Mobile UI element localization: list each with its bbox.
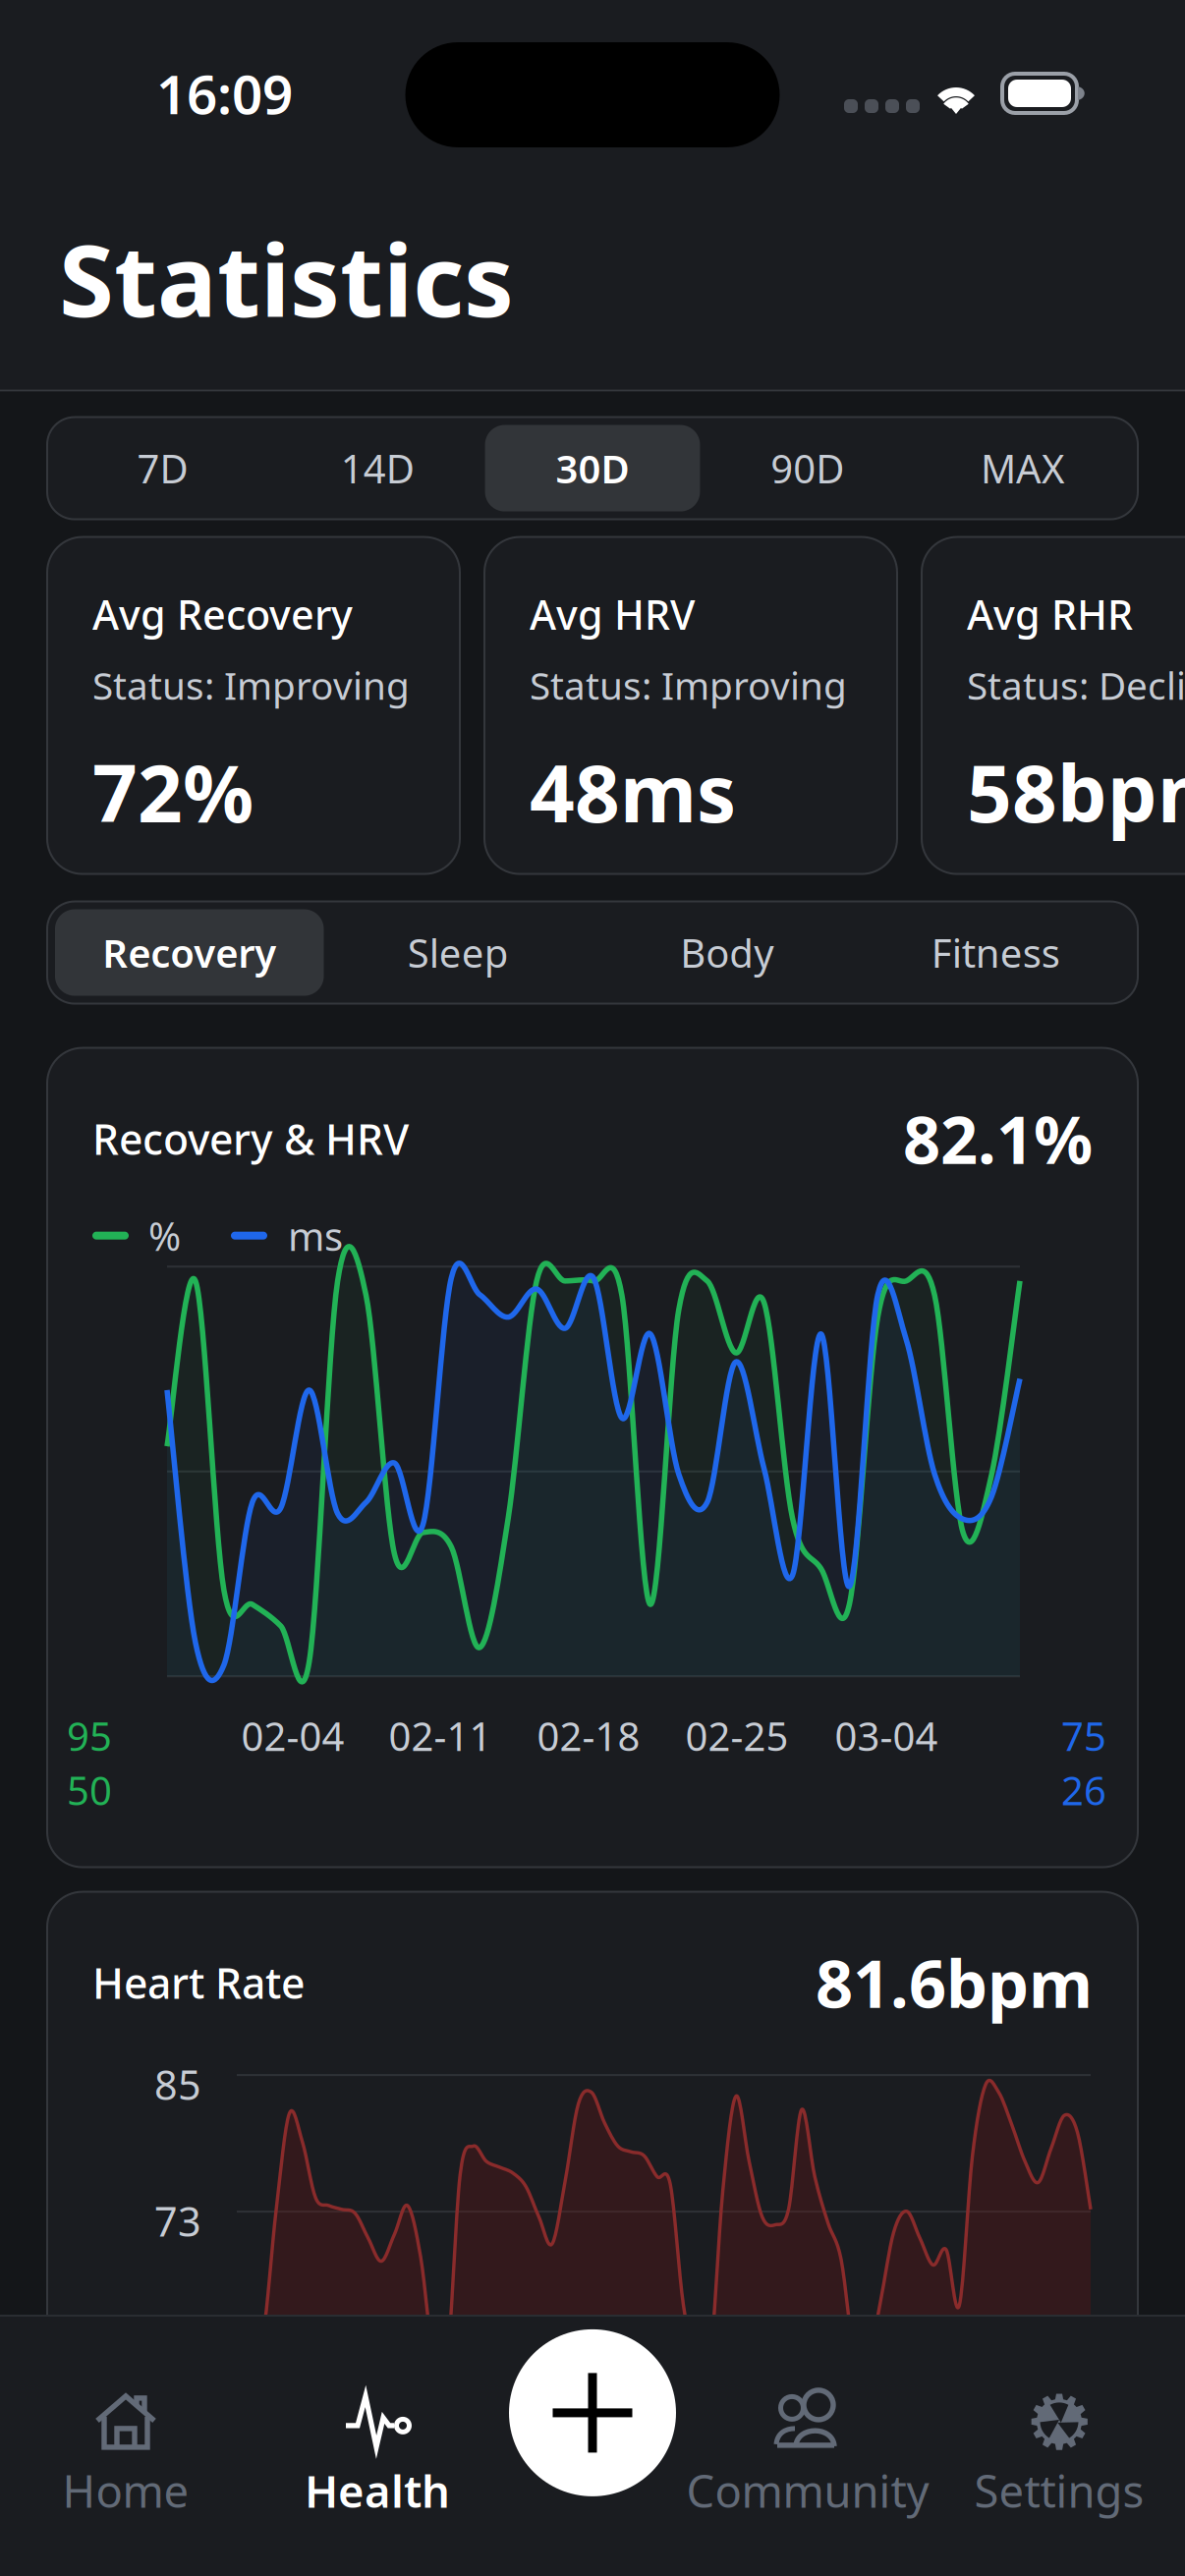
button[interactable]: Recovery — [55, 909, 324, 996]
staticText: Avg HRV — [530, 587, 695, 641]
staticText: 14D — [341, 442, 414, 494]
staticText: Status: Declining — [967, 660, 1185, 710]
button[interactable]: Settings — [933, 2286, 1185, 2576]
staticText: Fitness — [931, 926, 1060, 979]
button[interactable]: 90D — [700, 425, 915, 511]
button[interactable]: 14D — [270, 425, 485, 511]
staticText: 73 — [154, 2194, 201, 2248]
staticText: Home — [62, 2461, 189, 2520]
button[interactable]: Body — [592, 909, 861, 996]
staticText: 02-25 — [685, 1710, 789, 1762]
staticText: 75 — [1061, 1710, 1106, 1762]
staticText: 26 — [1061, 1764, 1106, 1816]
staticText: 02-04 — [241, 1710, 344, 1762]
staticText: 90D — [771, 442, 844, 494]
staticText: 85 — [154, 2057, 201, 2111]
button[interactable]: Avg RHR — [922, 537, 1185, 874]
staticText: 81.6bpm — [816, 1939, 1093, 2026]
staticText: Community — [686, 2461, 929, 2520]
staticText: Statistics — [59, 212, 514, 344]
staticText: Avg RHR — [967, 587, 1133, 641]
button[interactable]: MAX — [915, 425, 1130, 511]
staticText: 03-04 — [835, 1710, 938, 1762]
staticText: 02-11 — [389, 1710, 492, 1762]
button[interactable]: Fitness — [861, 909, 1130, 996]
staticText: 02-18 — [537, 1710, 640, 1762]
staticText: 48ms — [530, 740, 736, 844]
staticText: 82.1% — [903, 1095, 1093, 1182]
button[interactable]: Avg Recovery — [47, 537, 460, 874]
staticText: Health — [305, 2461, 450, 2520]
button[interactable]: 30D — [485, 425, 700, 511]
staticText: Status: Improving — [530, 660, 847, 710]
button[interactable]: Health — [252, 2286, 503, 2576]
button[interactable]: 7D — [55, 425, 270, 511]
staticText: Status: Improving — [92, 660, 410, 710]
staticText: Heart Rate — [92, 1955, 305, 2010]
staticText: 95 — [67, 1710, 112, 1762]
button[interactable]: Sleep — [324, 909, 592, 996]
staticText: % — [148, 1210, 181, 1262]
staticText: Recovery — [102, 926, 276, 979]
staticText: MAX — [981, 442, 1064, 494]
staticText: 50 — [67, 1764, 112, 1816]
staticText: 30D — [556, 442, 629, 494]
staticText: 16:09 — [156, 58, 293, 129]
button[interactable]: Community — [682, 2286, 933, 2576]
staticText: Avg Recovery — [92, 587, 353, 641]
button[interactable]: Add — [509, 2329, 676, 2496]
staticText: Settings — [974, 2461, 1144, 2520]
staticText: 58bpm — [967, 740, 1185, 844]
staticText: 7D — [137, 442, 188, 494]
button[interactable]: Avg HRV — [484, 537, 897, 874]
staticText: 72% — [92, 740, 254, 844]
button[interactable]: Home — [0, 2286, 252, 2576]
staticText: Sleep — [408, 926, 509, 979]
staticText: Recovery & HRV — [92, 1111, 409, 1166]
staticText: Body — [680, 926, 773, 979]
staticText: ms — [288, 1210, 343, 1262]
